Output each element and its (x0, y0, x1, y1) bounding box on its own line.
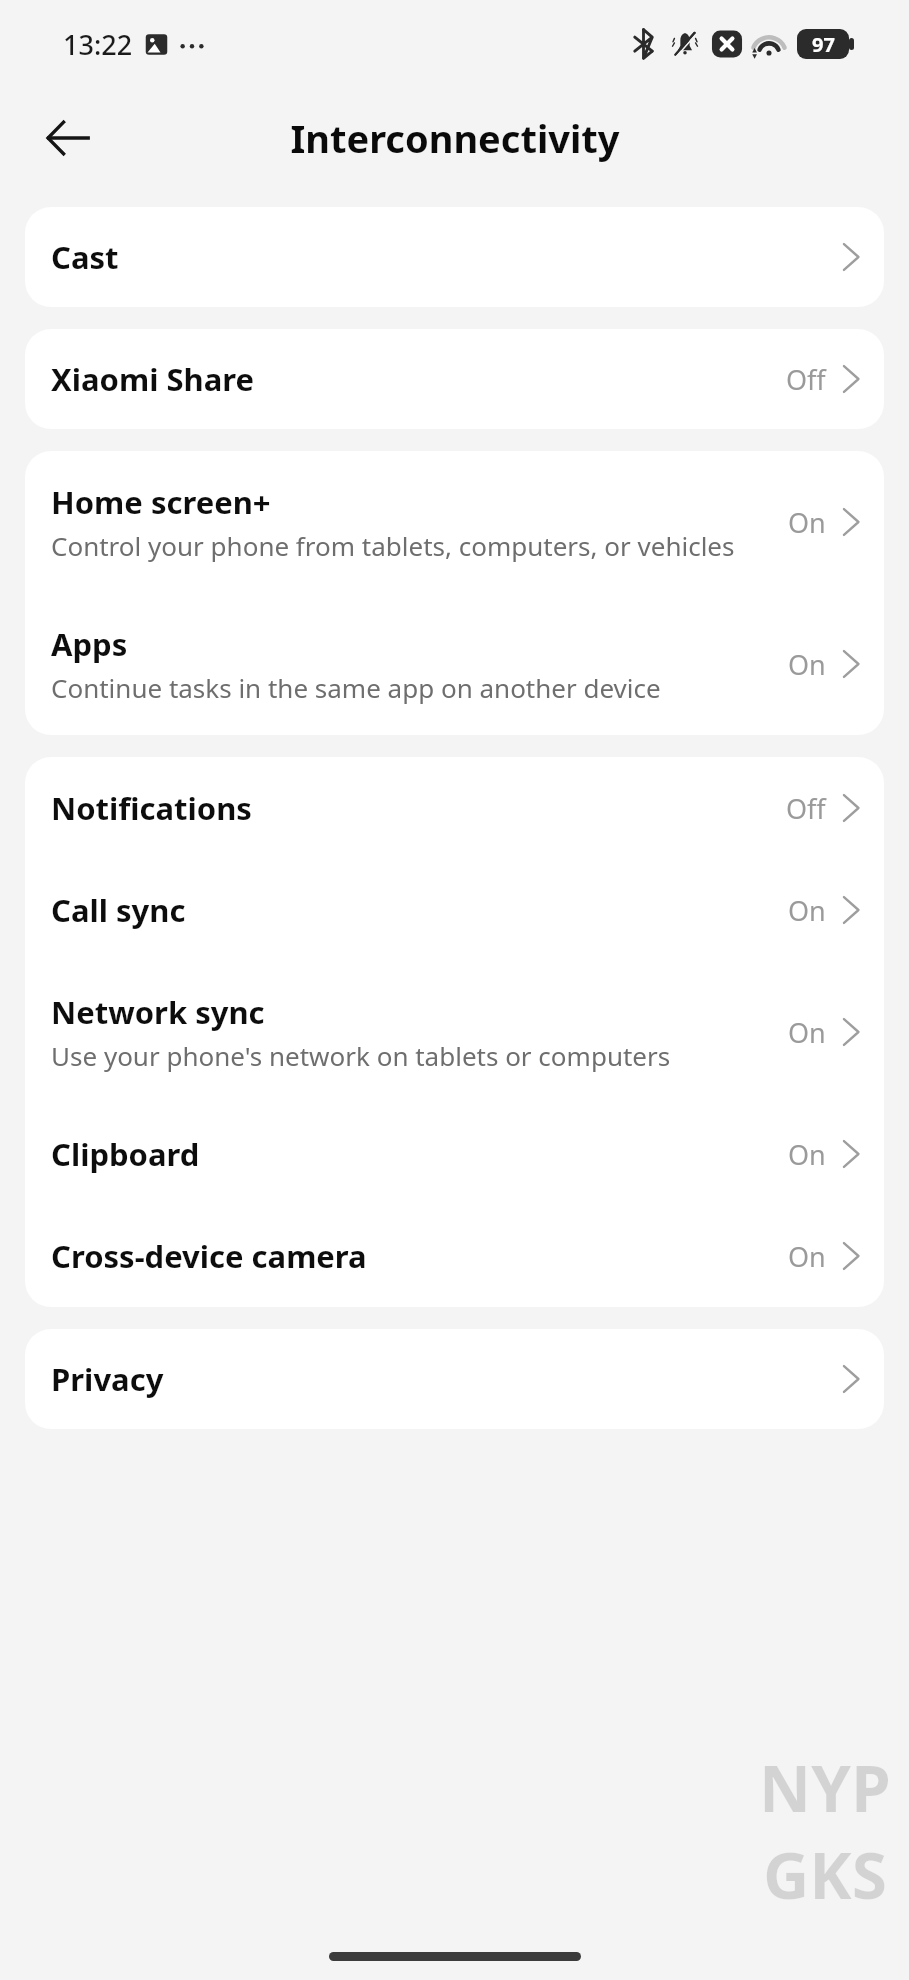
staticText: Call sync (51, 889, 788, 931)
button[interactable]: Xiaomi Share (25, 329, 884, 429)
staticText: NYP (759, 1744, 891, 1831)
staticText: Off (786, 361, 826, 398)
staticText: Cross-device camera (51, 1235, 788, 1277)
staticText: On (788, 892, 826, 929)
button[interactable]: Network sync (25, 961, 884, 1103)
staticText: Cast (51, 236, 840, 278)
staticText: On (788, 1136, 826, 1173)
button[interactable]: Privacy (25, 1329, 884, 1429)
staticText: 97 (812, 31, 835, 58)
button[interactable]: Home screen+ (25, 451, 884, 593)
staticText: GKS (763, 1831, 888, 1918)
button[interactable]: Clipboard (25, 1103, 884, 1205)
staticText: On (788, 646, 826, 683)
staticText: Control your phone from tablets, compute… (51, 528, 735, 563)
staticText: Off (786, 790, 826, 827)
staticText: On (788, 504, 826, 541)
staticText: On (788, 1238, 826, 1275)
button[interactable]: Back (30, 100, 106, 176)
staticText: Home screen+ (51, 481, 271, 523)
staticText: Use your phone's network on tablets or c… (51, 1038, 671, 1073)
staticText: 13:22 (63, 26, 133, 63)
button[interactable]: Call sync (25, 859, 884, 961)
staticText: Continue tasks in the same app on anothe… (51, 670, 661, 705)
staticText: Notifications (51, 787, 786, 829)
staticText: Clipboard (51, 1133, 788, 1175)
button[interactable]: Cast (25, 207, 884, 307)
staticText: On (788, 1014, 826, 1051)
staticText: Xiaomi Share (51, 358, 786, 400)
staticText: Apps (51, 623, 128, 665)
staticText: Interconnectivity (290, 112, 620, 164)
button[interactable]: Cross-device camera (25, 1205, 884, 1307)
button[interactable]: Apps (25, 593, 884, 735)
staticText: Network sync (51, 991, 265, 1033)
button[interactable]: Notifications (25, 757, 884, 859)
staticText: Privacy (51, 1358, 840, 1400)
